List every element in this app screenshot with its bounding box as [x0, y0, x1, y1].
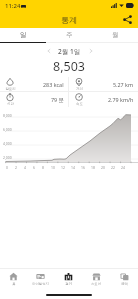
staticText: 12 — [61, 165, 65, 170]
staticText: 79 분 — [51, 96, 64, 103]
staticText: 걷기 — [65, 282, 72, 286]
staticText: 속도 — [76, 102, 83, 106]
button[interactable]: 시간 — [0, 92, 68, 107]
staticText: 20 — [101, 165, 105, 170]
staticText: 8,503 — [53, 58, 85, 75]
staticText: 일 — [20, 31, 27, 39]
staticText: 6 — [33, 165, 35, 170]
staticText: 월 — [112, 31, 119, 39]
staticText: 8,000 — [3, 113, 12, 118]
staticText: 6,000 — [3, 127, 12, 132]
staticText: 마이챌린지 — [32, 282, 49, 286]
staticText: 2.79 km/h — [108, 96, 134, 103]
staticText: 스토어 — [91, 282, 101, 286]
staticText: 주 — [66, 31, 73, 39]
button[interactable]: 홈 — [0, 268, 27, 290]
button[interactable]: 거리 — [69, 77, 138, 91]
staticText: 2 — [15, 165, 17, 170]
button[interactable]: 속도 — [69, 92, 138, 107]
button[interactable]: 칼로리 — [0, 77, 68, 91]
button[interactable]: 월 — [92, 28, 138, 43]
button[interactable]: 걷기 — [54, 268, 82, 290]
staticText: 칼로리 — [5, 87, 16, 91]
button[interactable]: 마이챌린지 — [27, 268, 54, 290]
button[interactable]: 스토어 — [82, 268, 110, 290]
button[interactable]: 주 — [46, 28, 92, 43]
staticText: 22 — [111, 165, 115, 170]
staticText: 8 — [42, 165, 44, 170]
staticText: 거리 — [76, 87, 83, 91]
staticText: 283 kcal — [43, 81, 64, 88]
staticText: 시간 — [7, 102, 14, 106]
button[interactable]: Next day — [85, 45, 96, 56]
button[interactable]: 혜택 — [110, 268, 138, 290]
staticText: 홈 — [12, 282, 16, 286]
staticText: 10 — [51, 165, 55, 170]
staticText: 5.27 km — [113, 81, 134, 88]
staticText: 4,000 — [3, 141, 12, 146]
staticText: 4 — [24, 165, 26, 170]
staticText: 14 — [71, 165, 75, 170]
staticText: 24 — [121, 165, 125, 170]
staticText: 2월 1일 — [58, 47, 81, 56]
button[interactable]: 일 — [0, 28, 46, 43]
staticText: 16 — [81, 165, 85, 170]
button[interactable]: Share — [121, 13, 134, 26]
staticText: 11:24 — [5, 2, 21, 10]
staticText: 혜택 — [121, 282, 128, 286]
button[interactable]: Previous day — [43, 45, 54, 56]
staticText: 0 — [6, 165, 8, 170]
staticText: 18 — [91, 165, 95, 170]
staticText: 통계 — [61, 15, 77, 25]
staticText: 2,000 — [3, 155, 12, 160]
